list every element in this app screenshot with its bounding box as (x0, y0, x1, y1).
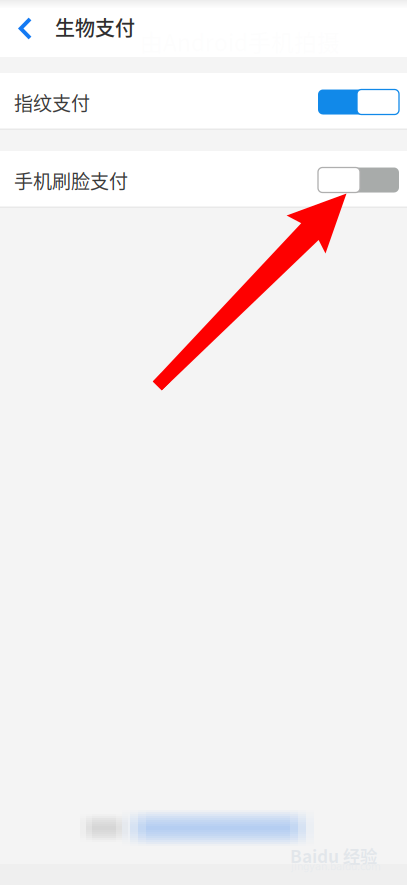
button[interactable]: 手机刷脸支付 (0, 151, 407, 206)
staticText: 指纹支付 (14, 89, 90, 116)
staticText: 手机刷脸支付 (14, 167, 128, 194)
staticText: Baidu 经验 (290, 843, 377, 868)
button[interactable]: Back (3, 6, 47, 50)
staticText: jingyan.baidu.com (291, 861, 381, 873)
staticText: 生物支付 (55, 12, 135, 41)
button[interactable]: 指纹支付 (0, 73, 407, 128)
